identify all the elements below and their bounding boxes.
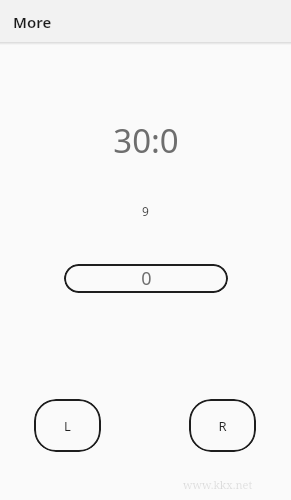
button[interactable]: 0 [64,264,228,293]
staticText: 9 [142,203,149,219]
button[interactable]: R [189,399,256,452]
staticText: L [64,417,71,435]
button[interactable]: L [34,399,101,452]
staticText: R [218,417,227,435]
staticText: 0 [141,266,152,291]
staticText: 30:0 [113,118,179,163]
staticText: www.kkx.net [183,477,253,492]
staticText: More [13,12,52,32]
